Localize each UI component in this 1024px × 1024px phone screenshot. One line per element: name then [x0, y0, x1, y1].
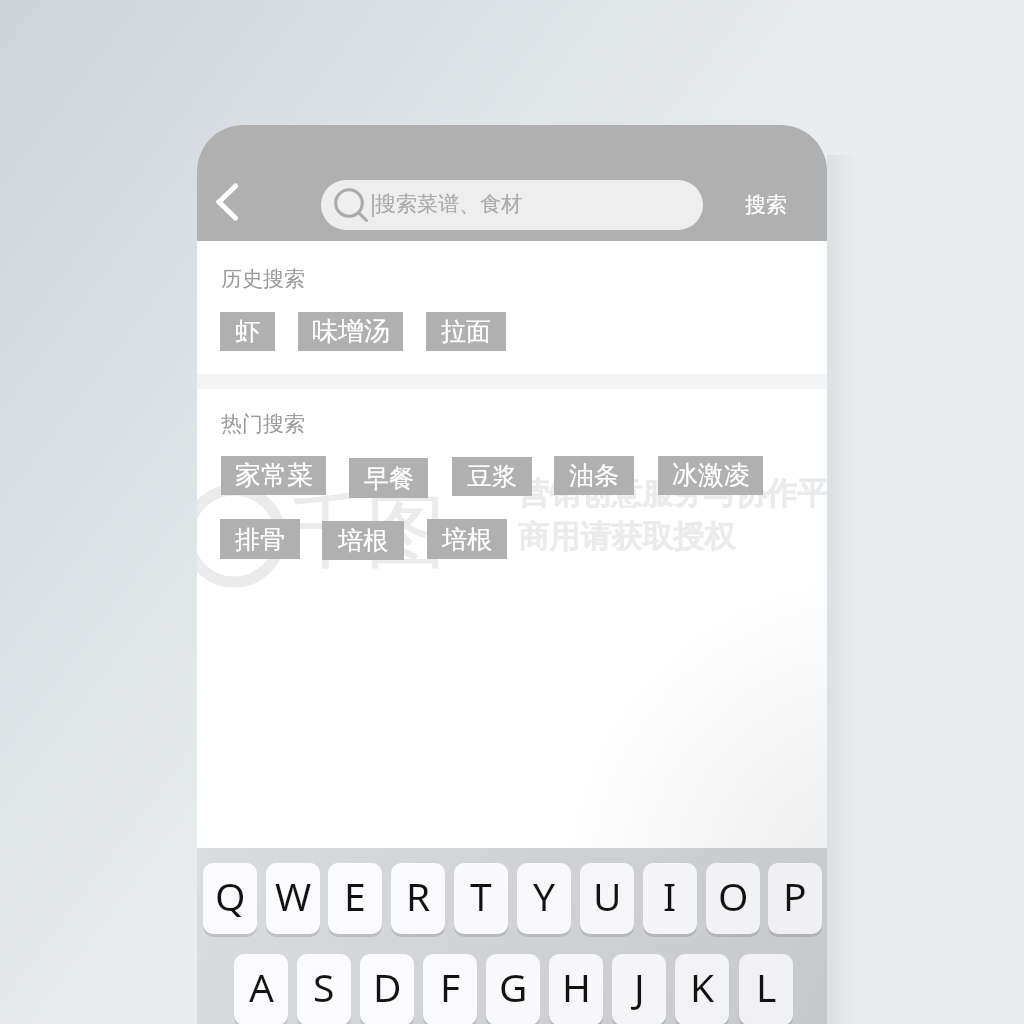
- staticText: 拉面: [441, 316, 491, 347]
- button[interactable]: H: [549, 954, 603, 1024]
- button[interactable]: 豆浆: [452, 457, 532, 496]
- button[interactable]: F: [423, 954, 477, 1024]
- staticText: 搜索菜谱、食材: [375, 191, 522, 217]
- button[interactable]: P: [768, 863, 822, 934]
- staticText: 培根: [442, 524, 492, 555]
- button[interactable]: O: [706, 863, 760, 934]
- button[interactable]: I: [643, 863, 697, 934]
- button[interactable]: R: [391, 863, 445, 934]
- staticText: 油条: [569, 460, 619, 491]
- staticText: U: [593, 869, 622, 922]
- staticText: K: [690, 960, 715, 1013]
- button[interactable]: T: [454, 863, 508, 934]
- staticText: 搜索: [745, 192, 787, 218]
- staticText: 豆浆: [467, 461, 517, 492]
- staticText: 冰激凌: [672, 459, 750, 492]
- staticText: 热门搜索: [221, 411, 305, 437]
- staticText: 历史搜索: [221, 266, 305, 292]
- button[interactable]: Y: [517, 863, 571, 934]
- staticText: S: [313, 960, 335, 1013]
- button[interactable]: G: [486, 954, 540, 1024]
- staticText: E: [344, 869, 366, 922]
- button[interactable]: W: [266, 863, 320, 934]
- staticText: 商用请获取授权: [518, 517, 735, 556]
- staticText: 培根: [338, 525, 388, 556]
- button[interactable]: 培根: [322, 521, 404, 560]
- button[interactable]: 味增汤: [298, 312, 403, 351]
- staticText: J: [634, 960, 645, 1013]
- staticText: 排骨: [235, 524, 285, 555]
- staticText: W: [275, 869, 312, 922]
- staticText: T: [470, 869, 492, 922]
- button[interactable]: Search recipes and ingredients: [321, 180, 703, 230]
- button[interactable]: L: [739, 954, 793, 1024]
- button[interactable]: U: [580, 863, 634, 934]
- button[interactable]: D: [360, 954, 414, 1024]
- staticText: Q: [215, 869, 246, 922]
- button[interactable]: J: [612, 954, 666, 1024]
- staticText: D: [373, 960, 402, 1013]
- staticText: 味增汤: [312, 315, 390, 348]
- staticText: P: [783, 869, 807, 922]
- button[interactable]: E: [328, 863, 382, 934]
- button[interactable]: 培根: [427, 519, 507, 559]
- staticText: Y: [533, 869, 556, 922]
- button[interactable]: 油条: [554, 456, 634, 495]
- staticText: G: [499, 960, 528, 1013]
- staticText: R: [406, 869, 431, 922]
- staticText: L: [756, 960, 777, 1013]
- button[interactable]: K: [675, 954, 729, 1024]
- staticText: 早餐: [364, 463, 414, 494]
- staticText: 千图: [286, 482, 446, 583]
- staticText: 虾: [235, 316, 260, 347]
- staticText: 家常菜: [235, 459, 313, 492]
- staticText: H: [562, 960, 591, 1013]
- button[interactable]: 搜索: [737, 184, 795, 226]
- staticText: F: [440, 960, 461, 1013]
- button[interactable]: 虾: [220, 312, 275, 351]
- staticText: I: [663, 869, 677, 922]
- staticText: 营销创意服务与协作平台: [518, 474, 827, 513]
- staticText: O: [718, 869, 749, 922]
- button[interactable]: Q: [203, 863, 257, 934]
- staticText: A: [249, 960, 274, 1013]
- button[interactable]: 排骨: [220, 519, 300, 559]
- button[interactable]: Back: [205, 174, 261, 230]
- button[interactable]: 家常菜: [221, 456, 326, 495]
- button[interactable]: A: [234, 954, 288, 1024]
- button[interactable]: 早餐: [349, 458, 428, 498]
- button[interactable]: S: [297, 954, 351, 1024]
- button[interactable]: 冰激凌: [658, 456, 763, 495]
- button[interactable]: 拉面: [426, 312, 506, 351]
